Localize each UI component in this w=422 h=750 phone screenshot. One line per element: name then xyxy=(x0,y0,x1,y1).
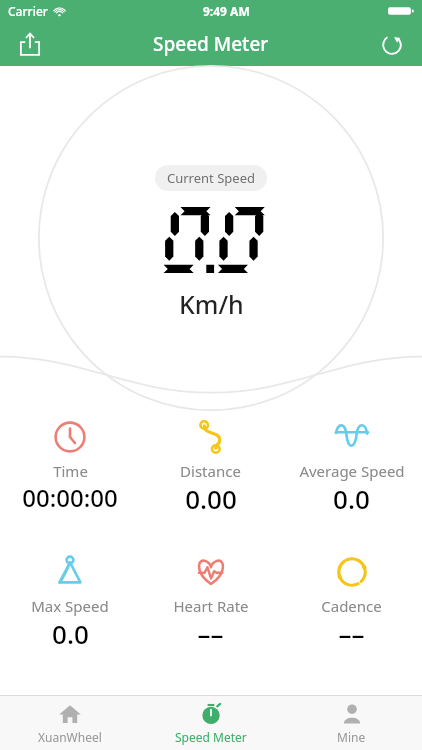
staticText: Max Speed xyxy=(31,596,109,616)
staticText: Km/h xyxy=(179,287,244,321)
button[interactable]: Heart Rate xyxy=(140,550,281,651)
button[interactable]: Refresh xyxy=(372,24,412,64)
staticText: Speed Meter xyxy=(175,729,247,745)
button[interactable]: Distance xyxy=(140,415,281,516)
staticText: Heart Rate xyxy=(173,596,249,616)
staticText: Distance xyxy=(180,461,241,481)
button[interactable]: Time xyxy=(0,415,140,514)
staticText: Mine xyxy=(337,729,366,745)
staticText: Speed Meter xyxy=(153,31,269,57)
staticText: Current Speed xyxy=(167,169,255,187)
staticText: –– xyxy=(338,616,365,651)
button[interactable]: XuanWheel xyxy=(0,696,140,750)
staticText: 9:49 AM xyxy=(203,3,250,19)
staticText: –– xyxy=(197,616,224,651)
staticText: Average Speed xyxy=(299,461,405,481)
staticText: 0.00 xyxy=(185,481,237,516)
staticText: 00:00:00 xyxy=(22,481,118,514)
button[interactable]: Share xyxy=(10,24,50,64)
staticText: Carrier xyxy=(8,3,48,19)
staticText: Time xyxy=(53,461,88,481)
button[interactable]: Average Speed xyxy=(281,415,422,516)
staticText: XuanWheel xyxy=(38,729,102,745)
staticText: 0.0 xyxy=(333,481,370,516)
button[interactable]: Mine xyxy=(281,696,422,750)
staticText: 0.0 xyxy=(52,616,89,651)
button[interactable]: Speed Meter xyxy=(140,696,281,750)
staticText: Cadence xyxy=(321,596,382,616)
button[interactable]: Cadence xyxy=(281,550,422,651)
button[interactable]: Max Speed xyxy=(0,550,140,651)
